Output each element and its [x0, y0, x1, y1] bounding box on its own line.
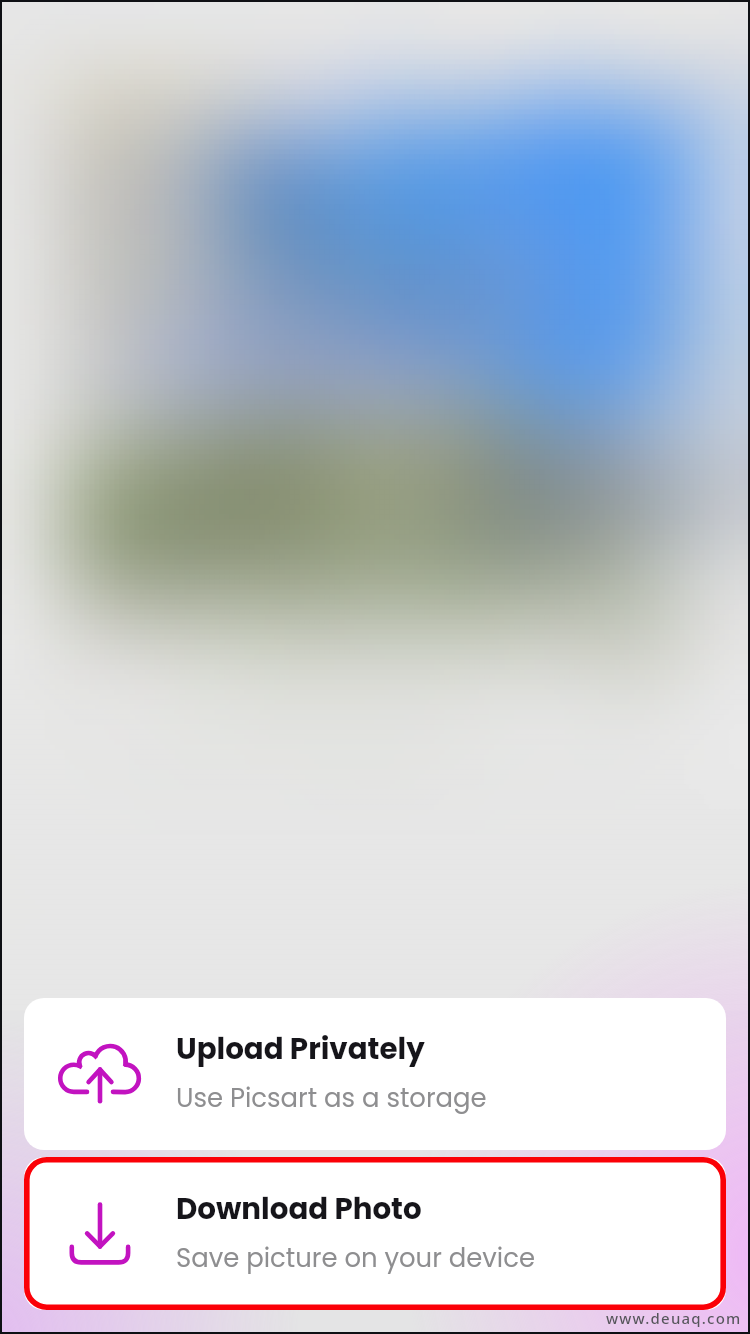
button[interactable]: Download photo	[24, 1157, 726, 1310]
other: Upload privately	[54, 1042, 146, 1106]
button[interactable]: Upload privately	[24, 998, 726, 1150]
staticText: Download Photo	[176, 1188, 422, 1229]
staticText: Use Picsart as a storage	[176, 1080, 487, 1116]
staticText: www.deuaq.com	[606, 1308, 742, 1328]
staticText: Save picture on your device	[176, 1240, 535, 1276]
staticText: Upload Privately	[176, 1028, 425, 1069]
other: Download photo	[54, 1202, 146, 1266]
